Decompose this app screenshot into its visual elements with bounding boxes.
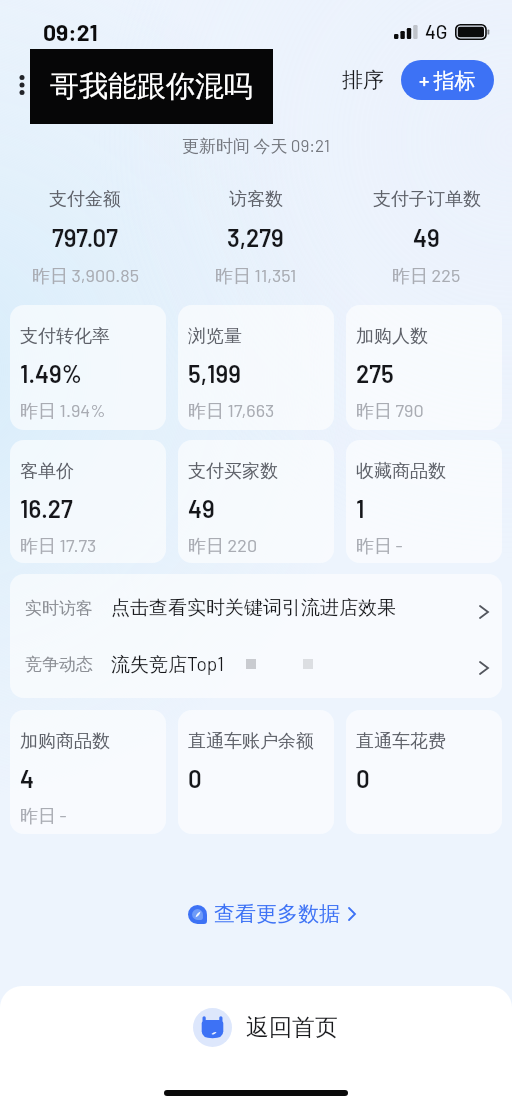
button[interactable]: 返回首页 (175, 1000, 356, 1055)
staticText: 返回首页 (246, 1013, 338, 1042)
button[interactable]: 浏览量 (178, 305, 334, 430)
staticText: 支付买家数 (188, 460, 278, 483)
staticText: 昨日 - (20, 804, 67, 827)
button[interactable]: More options (9, 60, 34, 110)
button[interactable]: 查看更多数据 (182, 896, 362, 932)
staticText: 昨日 3,900.85 (32, 264, 139, 287)
staticText: 昨日 11,351 (215, 264, 297, 287)
button[interactable]: 支付转化率 (10, 305, 166, 430)
staticText: + 指标 (419, 67, 476, 94)
button[interactable]: + 指标 (401, 60, 494, 100)
staticText: 昨日 17,663 (188, 399, 275, 422)
staticText: 直通车花费 (356, 730, 446, 753)
button[interactable]: 排序 (335, 60, 391, 100)
staticText: 0 (188, 764, 202, 793)
staticText: 昨日 17.73 (20, 534, 97, 557)
staticText: 4 (20, 764, 35, 793)
staticText: 49 (188, 494, 215, 523)
staticText: 昨日 225 (392, 264, 461, 287)
staticText: 排序 (342, 67, 384, 93)
staticText: 浏览量 (188, 325, 242, 348)
staticText: 加购商品数 (20, 730, 110, 753)
staticText: 支付转化率 (20, 325, 110, 348)
staticText: 流失竞店Top1 (111, 652, 224, 677)
staticText: 访客数 (229, 188, 283, 211)
staticText: 加购人数 (356, 325, 428, 348)
button[interactable]: 访客数 (170, 188, 341, 287)
staticText: 0 (356, 764, 370, 793)
button[interactable]: 收藏商品数 (346, 440, 502, 563)
staticText: 昨日 1.94% (20, 399, 106, 422)
button[interactable]: 哥我能跟你混吗 (30, 49, 273, 124)
staticText: 收藏商品数 (356, 460, 446, 483)
staticText: 275 (356, 359, 394, 388)
staticText: 客单价 (20, 460, 74, 483)
staticText: 支付子订单数 (373, 188, 481, 211)
staticText: 更新时间 今天 09:21 (182, 135, 330, 157)
staticText: 09:21 (43, 18, 98, 46)
staticText: 昨日 220 (188, 534, 258, 557)
staticText: 实时访客 (25, 598, 93, 619)
staticText: 797.07 (52, 223, 118, 252)
button[interactable]: 竞争动态 (10, 636, 502, 692)
staticText: 49 (413, 223, 440, 252)
staticText: 哥我能跟你混吗 (50, 68, 253, 105)
button[interactable]: 直通车花费 (346, 710, 502, 834)
staticText: 查看更多数据 (214, 901, 340, 927)
staticText: 5,199 (188, 359, 241, 388)
button[interactable]: 客单价 (10, 440, 166, 563)
staticText: 点击查看实时关键词引流进店效果 (111, 596, 396, 620)
staticText: 3,279 (227, 223, 284, 252)
staticText: 16.27 (20, 494, 73, 523)
button[interactable]: 支付金额 (0, 188, 170, 287)
button[interactable]: 加购人数 (346, 305, 502, 430)
staticText: 支付金额 (49, 188, 121, 211)
button[interactable]: 加购商品数 (10, 710, 166, 834)
staticText: 1.49% (20, 359, 82, 388)
staticText: 昨日 790 (356, 399, 424, 422)
button[interactable]: 直通车账户余额 (178, 710, 334, 834)
button[interactable]: 支付子订单数 (341, 188, 512, 287)
button[interactable]: 支付买家数 (178, 440, 334, 563)
staticText: 4G (425, 20, 448, 43)
staticText: 1 (356, 494, 365, 523)
staticText: 昨日 - (356, 534, 403, 557)
button[interactable]: 实时访客 (10, 580, 502, 636)
staticText: 竞争动态 (25, 654, 93, 675)
staticText: 直通车账户余额 (188, 730, 314, 753)
